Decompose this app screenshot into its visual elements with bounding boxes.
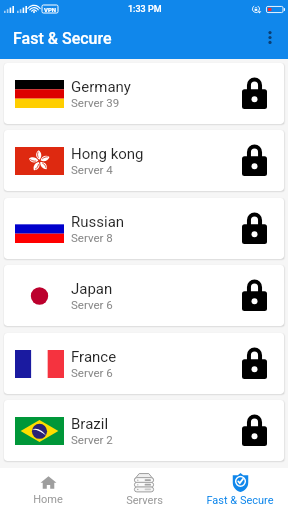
staticText: Server 6 [71,366,113,379]
staticText: France [71,348,117,366]
button[interactable]: Brazil [4,400,284,461]
button[interactable]: Germany [4,63,284,124]
staticText: Fast & Secure [206,494,274,507]
staticText: Server 2 [71,433,113,446]
staticText: Germany [71,78,131,96]
other: Locked server [242,281,267,311]
staticText: Home [33,493,63,506]
staticText: Server 39 [71,96,120,109]
staticText: Server 6 [71,298,113,311]
button[interactable]: More options [252,21,288,57]
other: Locked server [242,146,267,176]
staticText: 1:33 PM [128,4,162,15]
other: Locked server [242,416,267,446]
button[interactable]: Servers [96,468,192,512]
staticText: Brazil [71,415,109,433]
button[interactable]: Home [0,468,96,512]
button[interactable]: Russian [4,198,284,259]
staticText: Server 4 [71,163,113,176]
staticText: Japan [71,280,113,298]
staticText: Russian [71,213,125,231]
staticText: Hong kong [71,145,144,163]
staticText: VPN [44,6,57,13]
other: Locked server [242,349,267,379]
button[interactable]: France [4,333,284,394]
other: Locked server [242,214,267,244]
button[interactable]: Fast & Secure [192,468,288,512]
other: Locked server [242,79,267,109]
button[interactable]: Japan [4,265,284,326]
staticText: Server 8 [71,231,113,244]
button[interactable]: Hong kong [4,130,284,191]
staticText: Fast & Secure [13,29,112,48]
staticText: Servers [126,494,163,507]
